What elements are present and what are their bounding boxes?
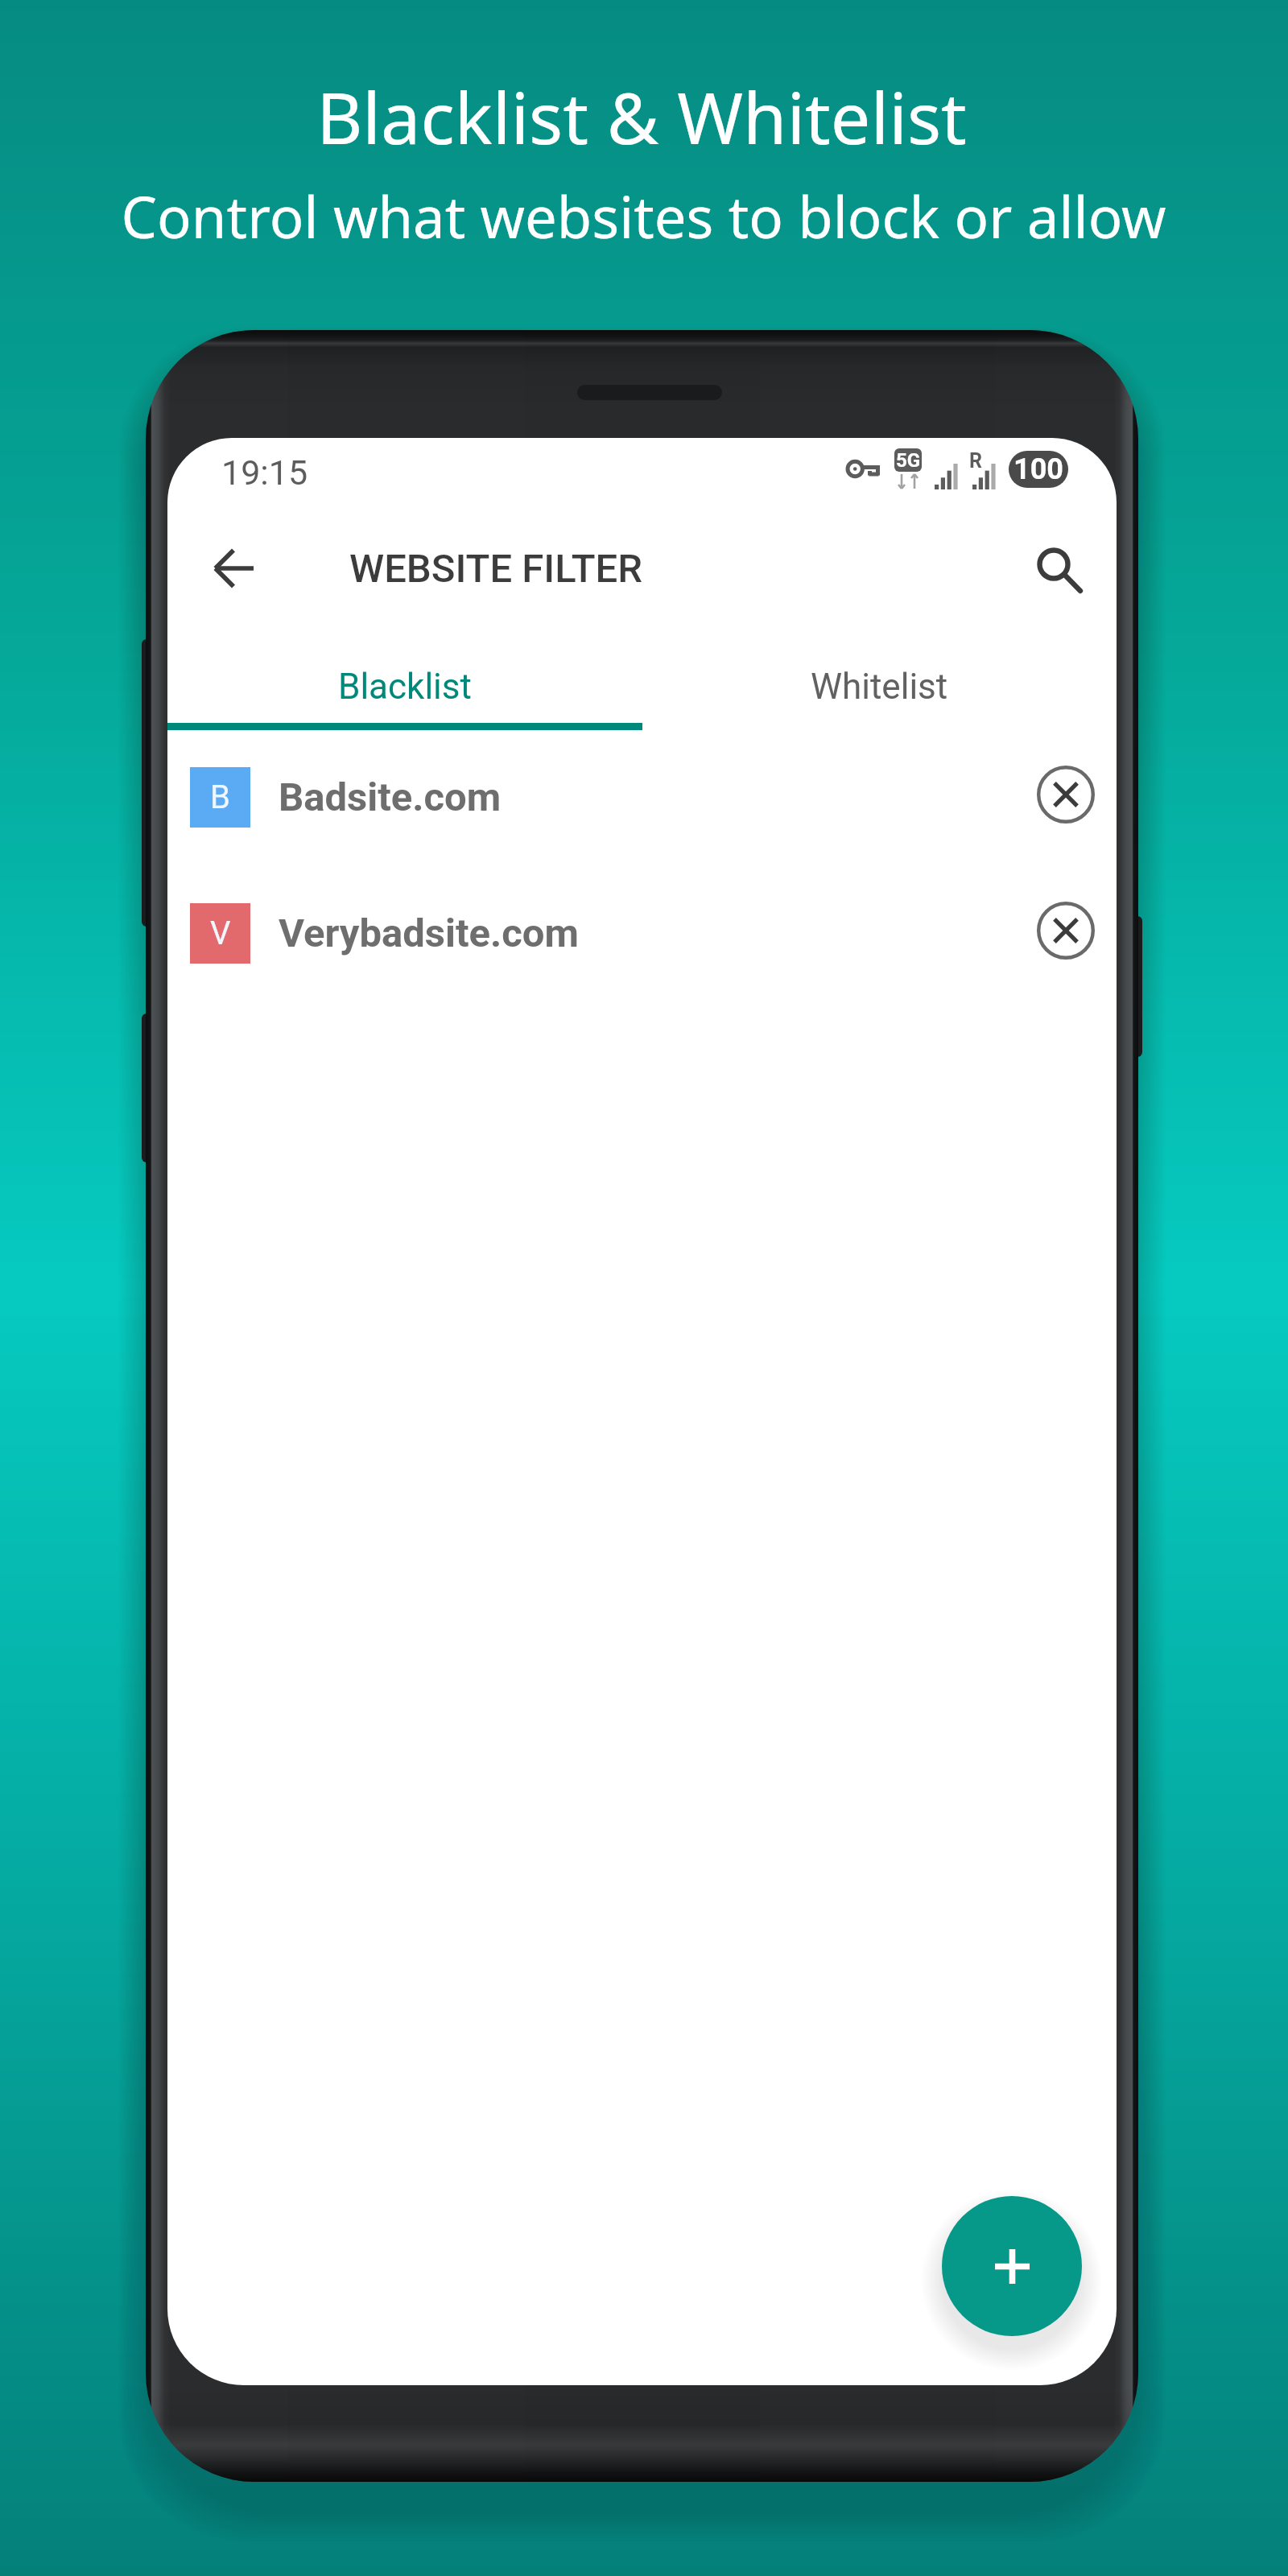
button[interactable]: Search <box>1016 527 1106 617</box>
staticText: Badsite.com <box>279 774 502 820</box>
staticText: B <box>210 778 230 816</box>
button[interactable]: Remove <box>1022 887 1109 974</box>
staticText: Control what websites to block or allow <box>121 178 1166 255</box>
staticText: Blacklist <box>338 666 472 708</box>
staticText: R <box>969 449 983 473</box>
staticText: Verybadsite.com <box>279 910 579 956</box>
staticText: 100 <box>1013 452 1063 486</box>
button[interactable]: Remove <box>1022 751 1109 838</box>
staticText: V <box>210 914 231 952</box>
button[interactable]: Add website <box>942 2196 1082 2336</box>
button[interactable]: B <box>167 729 1117 865</box>
staticText: 5G <box>896 449 921 472</box>
staticText: Whitelist <box>811 666 948 708</box>
staticText: WEBSITE FILTER <box>349 546 643 592</box>
button[interactable]: Back <box>188 523 279 613</box>
staticText: 19:15 <box>221 452 308 493</box>
staticText: Blacklist & Whitelist <box>316 68 967 165</box>
button[interactable]: Whitelist <box>642 638 1117 735</box>
button[interactable]: V <box>167 865 1117 1001</box>
button[interactable]: Blacklist <box>167 638 642 735</box>
